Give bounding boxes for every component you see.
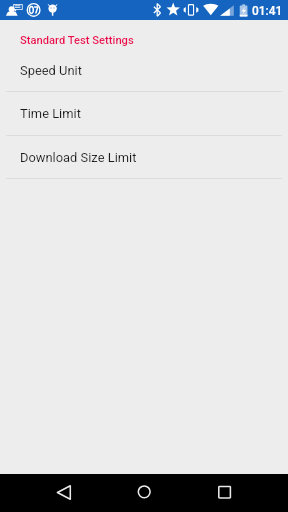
button[interactable]: Home	[122, 474, 166, 512]
button[interactable]: Back	[42, 474, 86, 512]
button[interactable]: Recent apps	[202, 474, 246, 512]
button[interactable]: Download Size Limit	[0, 135, 288, 179]
staticText: Time Limit	[20, 106, 81, 121]
staticText: Standard Test Settings	[20, 34, 134, 47]
button[interactable]: Speed Unit	[0, 48, 288, 92]
staticText: 01:41	[252, 4, 283, 18]
staticText: Download Size Limit	[20, 150, 137, 165]
button[interactable]: Time Limit	[0, 91, 288, 135]
staticText: Speed Unit	[20, 63, 82, 78]
